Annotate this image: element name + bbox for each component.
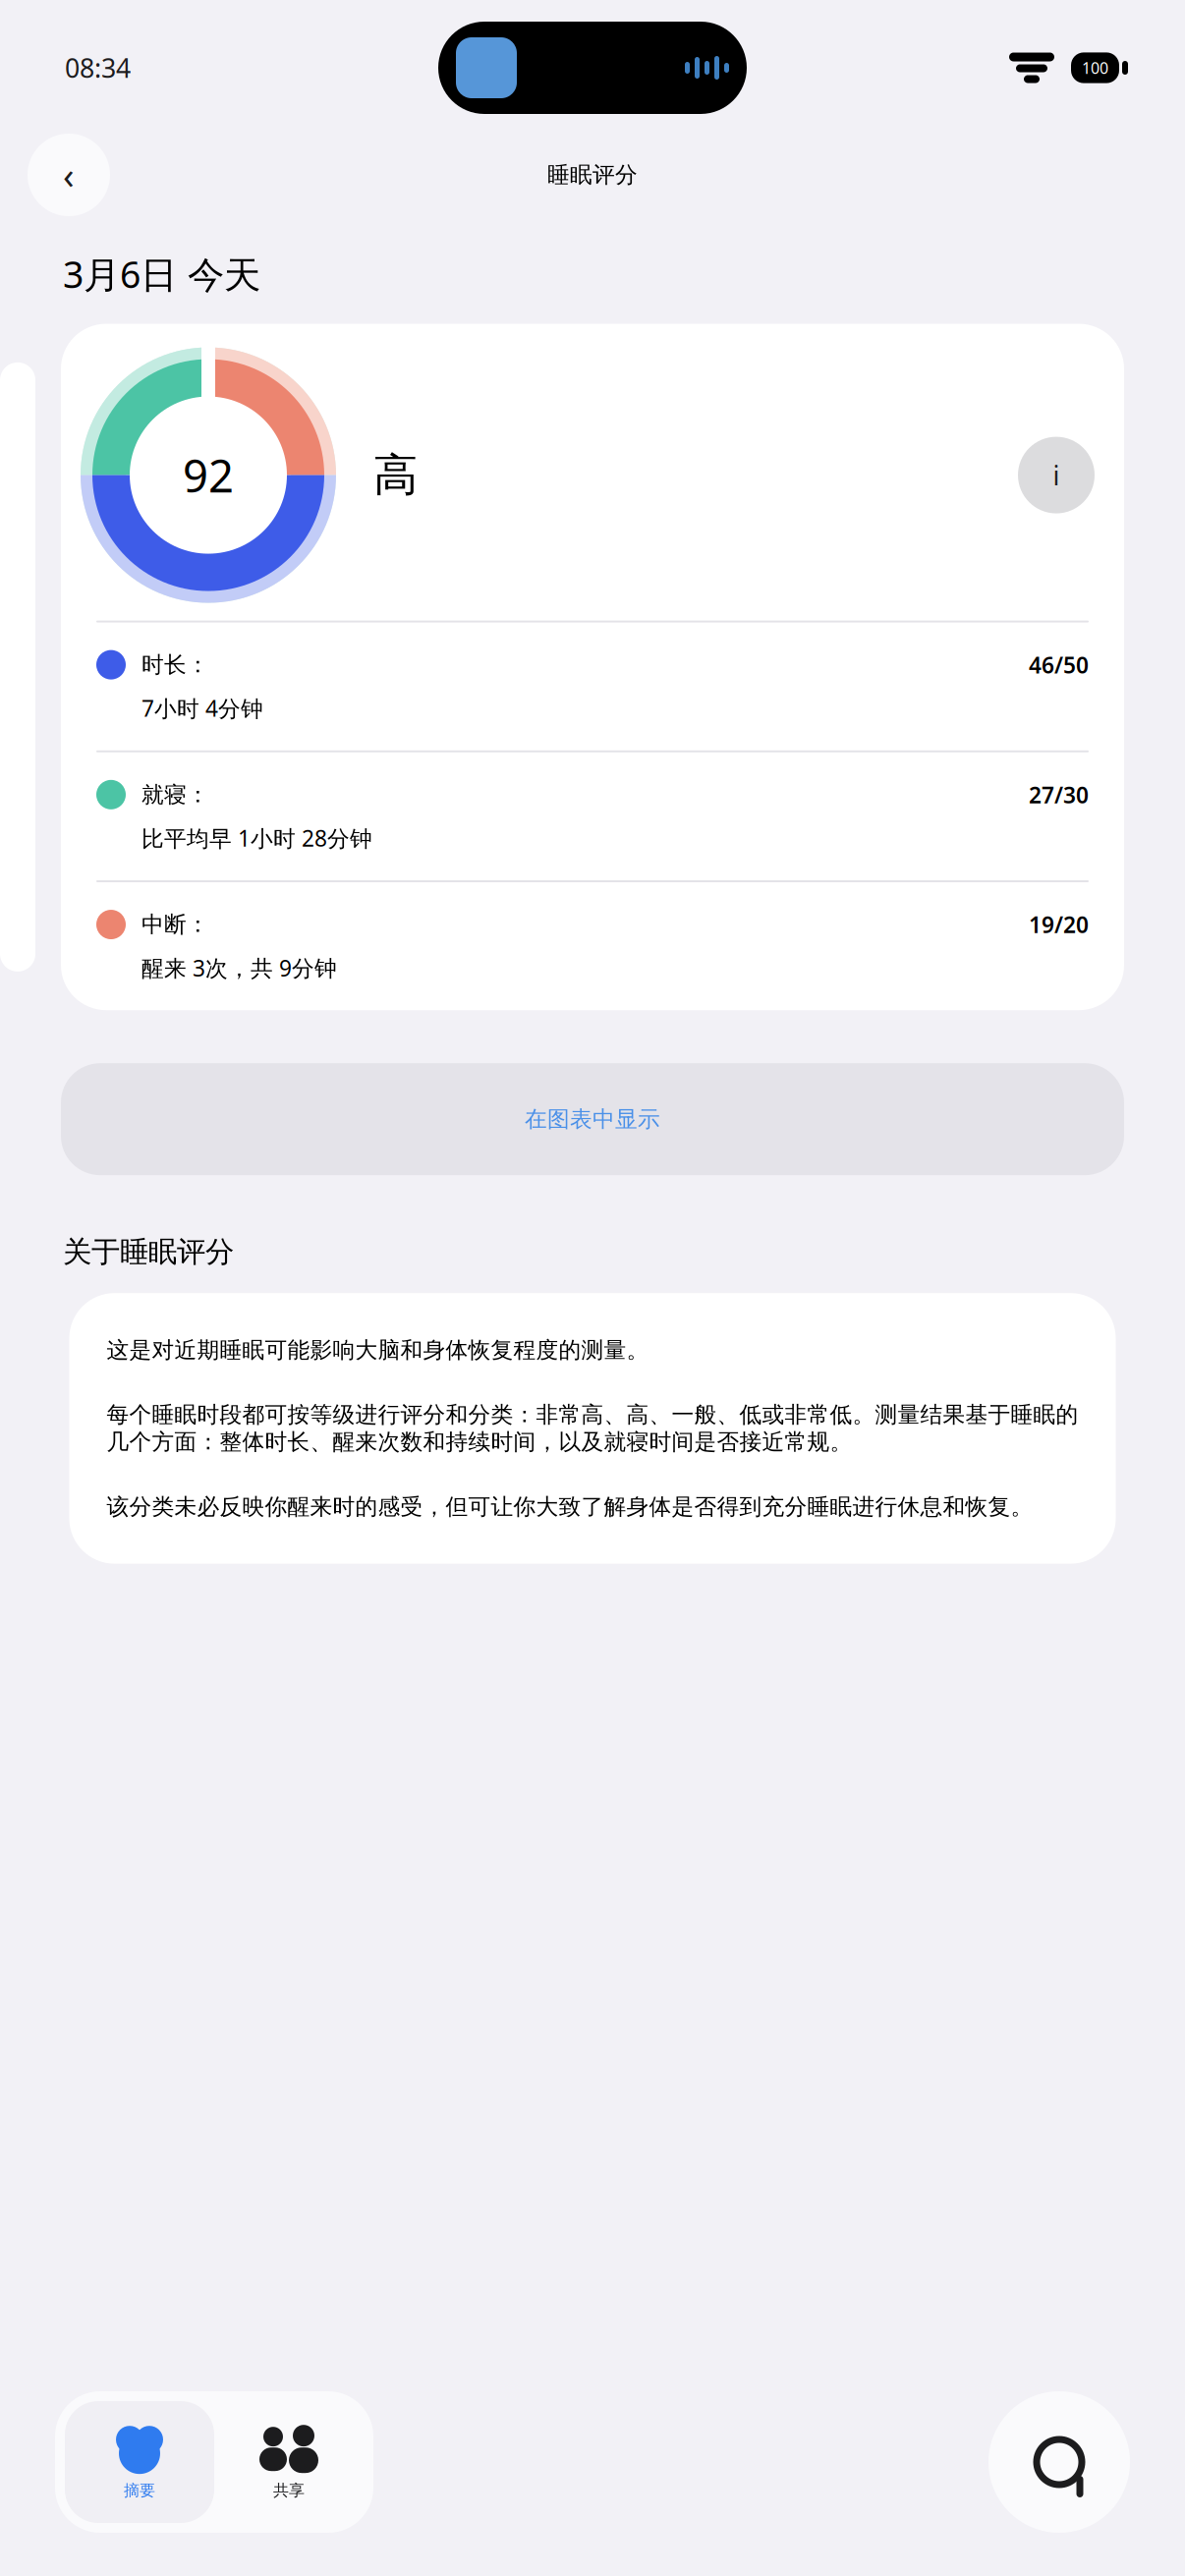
button[interactable]: 信息 bbox=[1018, 437, 1095, 513]
staticText: i bbox=[1053, 458, 1060, 493]
staticText: 中断： bbox=[141, 911, 209, 938]
staticText: 睡眠评分 bbox=[547, 161, 638, 189]
staticText: 共享 bbox=[273, 2481, 305, 2500]
button[interactable]: 搜索 bbox=[988, 2391, 1130, 2533]
staticText: 比平均早 1小时 28分钟 bbox=[141, 823, 372, 853]
staticText: 3月6日 今天 bbox=[63, 250, 260, 298]
staticText: 该分类未必反映你醒来时的感受，但可让你大致了解身体是否得到充分睡眠进行休息和恢复… bbox=[107, 1493, 1033, 1520]
staticText: 27/30 bbox=[1029, 780, 1089, 809]
staticText: 时长： bbox=[141, 651, 209, 678]
staticText: 摘要 bbox=[124, 2481, 155, 2500]
button[interactable]: 摘要 bbox=[65, 2401, 214, 2523]
staticText: 高 bbox=[373, 448, 418, 502]
staticText: 19/20 bbox=[1029, 910, 1089, 939]
staticText: 08:34 bbox=[65, 50, 131, 85]
staticText: 92 bbox=[183, 446, 234, 505]
staticText: 关于睡眠评分 bbox=[63, 1234, 234, 1270]
staticText: 46/50 bbox=[1029, 650, 1089, 680]
staticText: 这是对近期睡眠可能影响大脑和身体恢复程度的测量。 bbox=[107, 1336, 649, 1364]
button[interactable]: 共享 bbox=[214, 2401, 364, 2523]
staticText: 每个睡眠时段都可按等级进行评分和分类：非常高、高、一般、低或非常低。测量结果基于… bbox=[107, 1401, 1078, 1456]
staticText: 7小时 4分钟 bbox=[141, 693, 263, 723]
staticText: 醒来 3次，共 9分钟 bbox=[141, 953, 337, 983]
staticText: 在图表中显示 bbox=[525, 1106, 660, 1133]
button[interactable]: 在图表中显示 bbox=[61, 1063, 1124, 1175]
staticText: 就寝： bbox=[141, 781, 209, 808]
button[interactable]: 返回 bbox=[28, 134, 110, 216]
staticText: ‹ bbox=[63, 151, 75, 199]
staticText: 100 bbox=[1082, 57, 1108, 78]
